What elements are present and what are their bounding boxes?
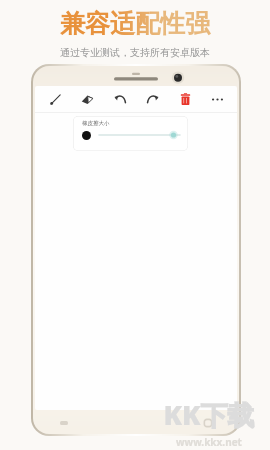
button[interactable]: Delete — [174, 88, 196, 110]
staticText: www.kkx.net — [176, 435, 242, 446]
button[interactable]: Redo — [141, 88, 163, 110]
button[interactable]: Menu — [57, 416, 71, 430]
button[interactable]: Eraser — [76, 88, 98, 110]
button[interactable]: 橡皮擦大小 — [73, 116, 188, 151]
staticText: 橡皮擦大小 — [82, 120, 110, 127]
button[interactable]: Undo — [109, 88, 131, 110]
staticText: 兼容适配性强 — [60, 8, 210, 39]
button[interactable]: Brush — [44, 88, 66, 110]
button[interactable]: More options — [206, 88, 228, 110]
staticText: 通过专业测试，支持所有安卓版本 — [60, 46, 210, 59]
button[interactable]: Home — [201, 416, 215, 430]
staticText: KK下载 — [163, 396, 255, 433]
